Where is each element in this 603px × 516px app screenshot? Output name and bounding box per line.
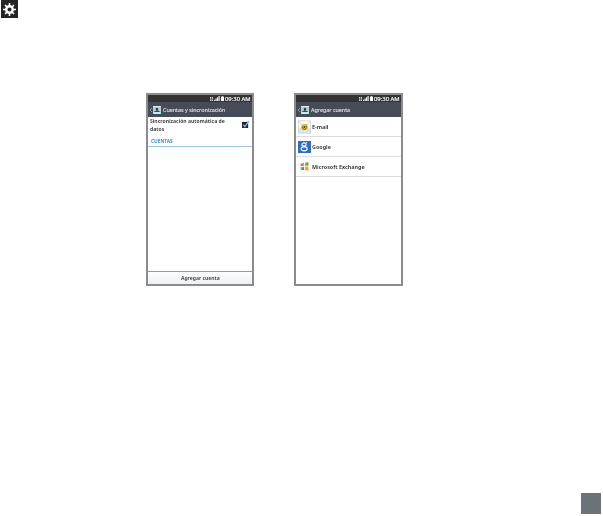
button[interactable]: Settings — [1, 0, 18, 18]
button[interactable]: Agregar cuenta — [296, 102, 401, 117]
staticText: Microsoft Exchange — [312, 163, 365, 170]
staticText: Cuentas y sincronización — [163, 106, 226, 113]
button[interactable]: E-mail — [298, 117, 401, 136]
button[interactable]: Microsoft Exchange — [298, 157, 401, 176]
button[interactable]: Google — [298, 137, 401, 156]
staticText: Google — [312, 143, 331, 150]
staticText: Agregar cuenta — [181, 275, 220, 282]
staticText: Agregar cuenta — [311, 106, 351, 113]
staticText: 09:30 AM — [374, 95, 400, 102]
staticText: Sincronización automática de datos — [150, 118, 227, 133]
staticText: E-mail — [312, 123, 329, 130]
button[interactable]: Cuentas y sincronización — [148, 102, 252, 117]
button[interactable]: Sincronización automática de datos — [148, 117, 252, 138]
button[interactable]: Agregar cuenta — [148, 272, 252, 284]
staticText: CUENTAS — [151, 138, 173, 145]
staticText: 09:30 AM — [225, 95, 251, 102]
